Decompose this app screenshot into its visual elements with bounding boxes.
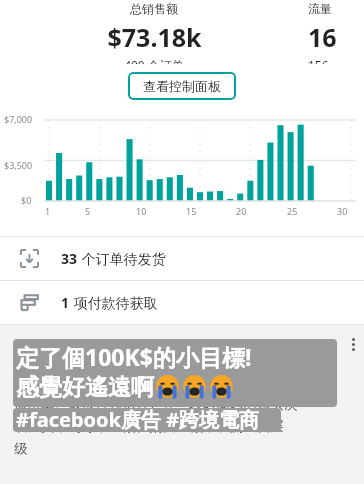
staticText: 总销售额 [130, 1, 178, 16]
staticText: 表及其平均订单金额、消费金额，和测试资层 [14, 418, 284, 435]
staticText: 409 个订单 [124, 57, 184, 64]
staticText: 级 [14, 440, 28, 457]
staticText: 15 [186, 205, 197, 217]
staticText: 通过新的群体分析报告概览一段时间内的客户 [14, 374, 284, 391]
staticText: 个订单待发货 [78, 249, 166, 268]
staticText: 项付款待获取 [70, 293, 158, 312]
staticText: 25 [287, 205, 298, 217]
staticText: $0 [21, 194, 32, 206]
staticText: $3,500 [4, 159, 33, 171]
button[interactable]: 查看控制面板 [128, 72, 236, 100]
button[interactable]: Orders to fulfill [0, 237, 364, 280]
staticText: 30 [337, 205, 348, 217]
staticText: #facebook廣告 #跨境電商 [16, 406, 260, 433]
staticText: 20 [236, 205, 247, 217]
other: Orders to fulfill [20, 249, 39, 268]
staticText: 流量 [308, 1, 332, 16]
staticText: 33 [61, 249, 78, 268]
staticText: 查看控制面板 [143, 78, 221, 94]
staticText: 1 [45, 205, 51, 217]
staticText: 定了個100K$的小目標! [16, 341, 252, 372]
button[interactable]: More options [349, 335, 358, 354]
staticText: 156 [308, 57, 329, 64]
staticText: $73.18k [107, 20, 202, 54]
staticText: 10 [136, 205, 147, 217]
staticText: 16 [308, 20, 337, 54]
staticText: 5 [85, 205, 91, 217]
staticText: 1 [61, 293, 70, 312]
staticText: 使用新的群体分析了解您最忠实的客户群 [14, 343, 257, 360]
button[interactable]: Payments to capture [0, 281, 364, 324]
staticText: 保留率。该报告包括客户在一段时间内的购买次 [14, 396, 298, 413]
staticText: 感覺好遙遠啊 [16, 373, 154, 402]
other: Payments to capture [20, 293, 39, 312]
staticText: $7,000 [4, 113, 33, 125]
